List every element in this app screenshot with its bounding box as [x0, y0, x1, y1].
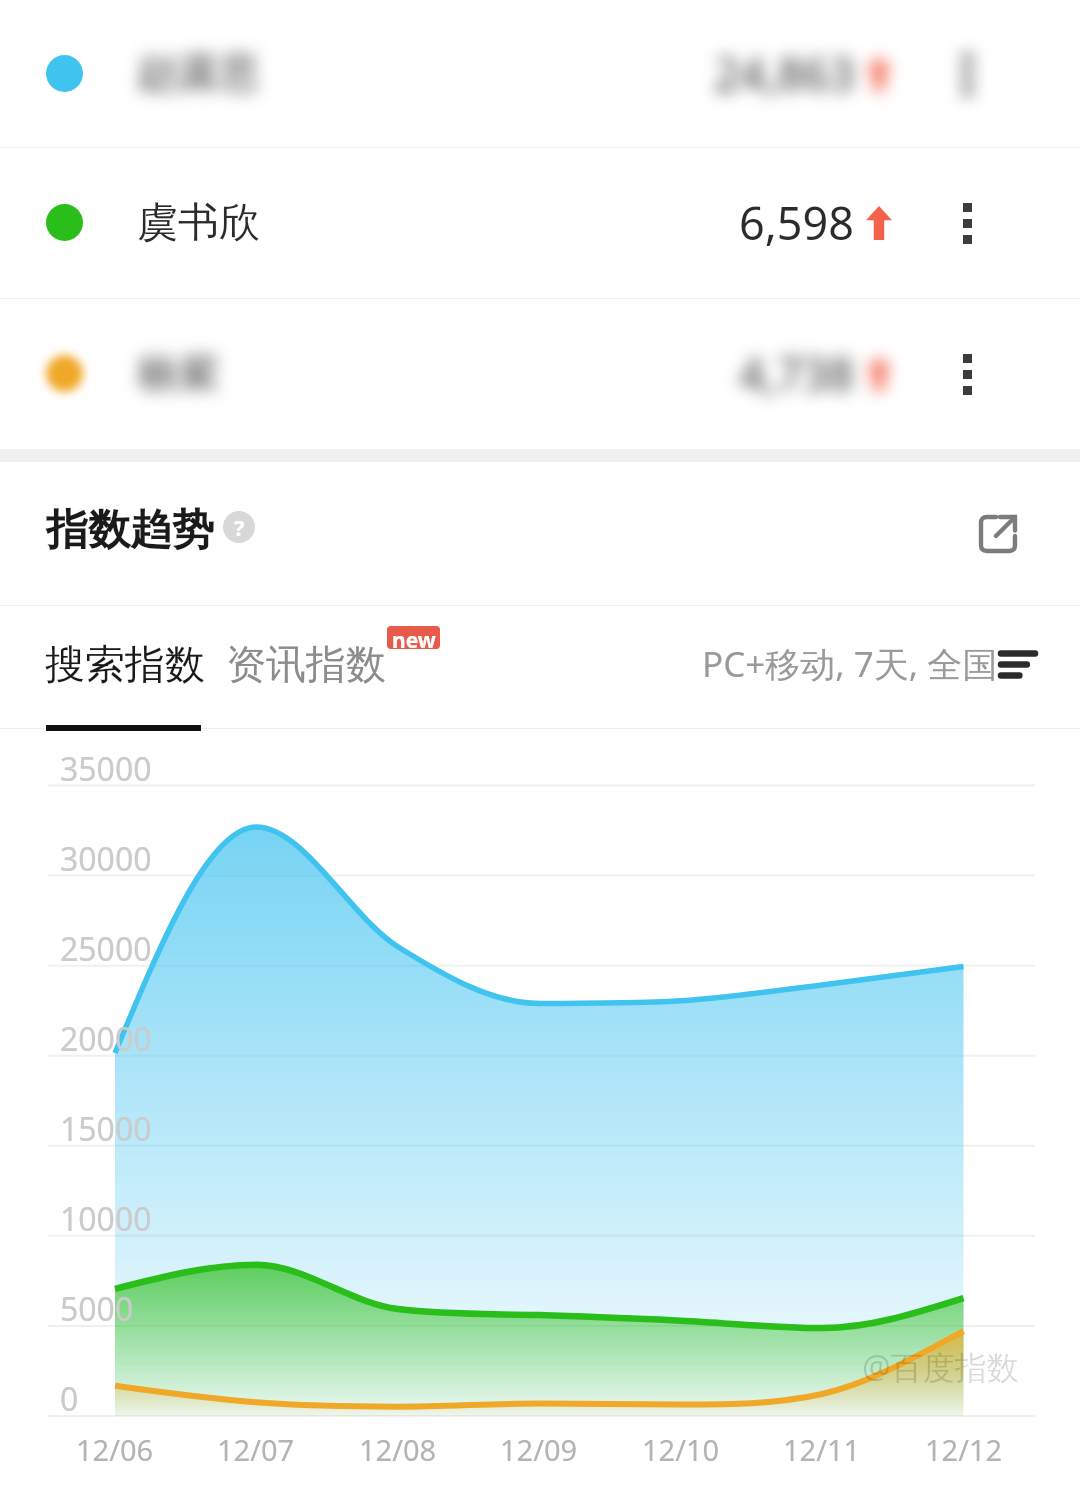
staticText: 24,863: [714, 43, 855, 104]
staticText: @百度指数: [862, 1345, 1019, 1389]
button[interactable]: 杨紫: [0, 298, 1080, 449]
staticText: 12/08: [359, 1430, 437, 1469]
staticText: new: [392, 626, 436, 649]
button[interactable]: 赵露思: [0, 0, 1080, 147]
staticText: 20000: [60, 1017, 152, 1061]
staticText: ?: [234, 512, 245, 542]
staticText: 0: [60, 1377, 79, 1421]
staticText: 5000: [60, 1287, 134, 1331]
staticText: 指数趋势: [46, 504, 214, 557]
staticText: 12/07: [217, 1430, 295, 1469]
staticText: 搜索指数: [45, 639, 205, 689]
staticText: 6,598: [739, 192, 855, 253]
staticText: 35000: [60, 747, 152, 791]
staticText: 10000: [60, 1197, 152, 1241]
staticText: 虞书欣: [137, 197, 260, 249]
button[interactable]: More options: [935, 342, 999, 406]
button[interactable]: Open in full screen: [962, 498, 1034, 570]
button[interactable]: More options: [935, 191, 999, 255]
staticText: 30000: [60, 837, 152, 881]
staticText: 15000: [60, 1107, 152, 1151]
staticText: 杨紫: [137, 348, 219, 400]
button[interactable]: 虞书欣: [0, 147, 1080, 298]
staticText: 12/09: [500, 1430, 578, 1469]
button[interactable]: Help: [223, 511, 255, 543]
staticText: 12/12: [925, 1430, 1003, 1469]
staticText: 赵露思: [137, 48, 260, 100]
button[interactable]: 资讯指数: [226, 639, 386, 689]
staticText: 12/10: [642, 1430, 720, 1469]
button[interactable]: 搜索指数: [45, 639, 205, 689]
button[interactable]: PC+移动, 7天, 全国: [702, 640, 1035, 688]
button[interactable]: More options: [935, 42, 999, 106]
staticText: PC+移动, 7天, 全国: [702, 640, 998, 688]
staticText: 25000: [60, 927, 152, 971]
staticText: 12/06: [76, 1430, 154, 1469]
staticText: 12/11: [783, 1430, 861, 1469]
staticText: 资讯指数: [226, 639, 386, 689]
staticText: 4,738: [739, 343, 855, 404]
